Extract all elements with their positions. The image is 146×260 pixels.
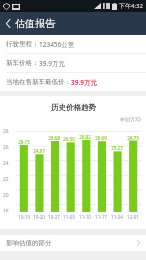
staticText: 123456公里 — [39, 40, 75, 49]
staticText: 20 — [3, 192, 9, 199]
staticText: 26.75 — [127, 135, 139, 141]
staticText: 行驶里程： — [6, 40, 39, 48]
staticText: 历史价格趋势 — [51, 103, 96, 112]
staticText: 当地在售新车最低价： — [6, 78, 71, 86]
staticText: 39.9万元 — [39, 59, 65, 68]
staticText: 26.66 — [95, 135, 107, 141]
staticText: 新车价格： — [6, 59, 39, 67]
button[interactable]: 行驶里程： — [0, 35, 146, 53]
button[interactable]: 新车价格： — [0, 54, 146, 72]
staticText: 11-10 — [79, 214, 91, 220]
staticText: 影响估值的部分 — [6, 239, 52, 247]
staticText: 26.68 — [48, 135, 60, 141]
staticText: 11-24 — [111, 214, 123, 220]
staticText: 单位(万元) — [120, 116, 141, 122]
staticText: 11-17 — [95, 214, 107, 220]
staticText: 26 — [3, 144, 9, 151]
button[interactable]: Back — [0, 13, 63, 34]
staticText: 11-03 — [63, 214, 75, 220]
staticText: 22 — [3, 176, 9, 183]
staticText: 24.87 — [33, 148, 45, 154]
button[interactable]: 当地在售新车最低价： — [0, 73, 146, 91]
button[interactable]: 影响估值的部分 — [0, 235, 146, 251]
staticText: 28 — [3, 128, 9, 135]
staticText: 39.9万元 — [71, 78, 97, 87]
staticText: 10-20 — [33, 214, 45, 220]
staticText: 12-01 — [127, 214, 139, 220]
staticText: 估值报告 — [15, 17, 55, 30]
staticText: 25.27 — [111, 145, 123, 151]
staticText: 10-13 — [18, 214, 30, 220]
staticText: 26.82 — [79, 134, 91, 140]
staticText: 26.50 — [63, 136, 75, 142]
staticText: 26.15 — [18, 139, 30, 145]
staticText: 18 — [3, 208, 9, 212]
staticText: 10-27 — [48, 214, 60, 220]
staticText: 24 — [3, 160, 9, 167]
staticText: 下午4:32 — [119, 2, 143, 10]
